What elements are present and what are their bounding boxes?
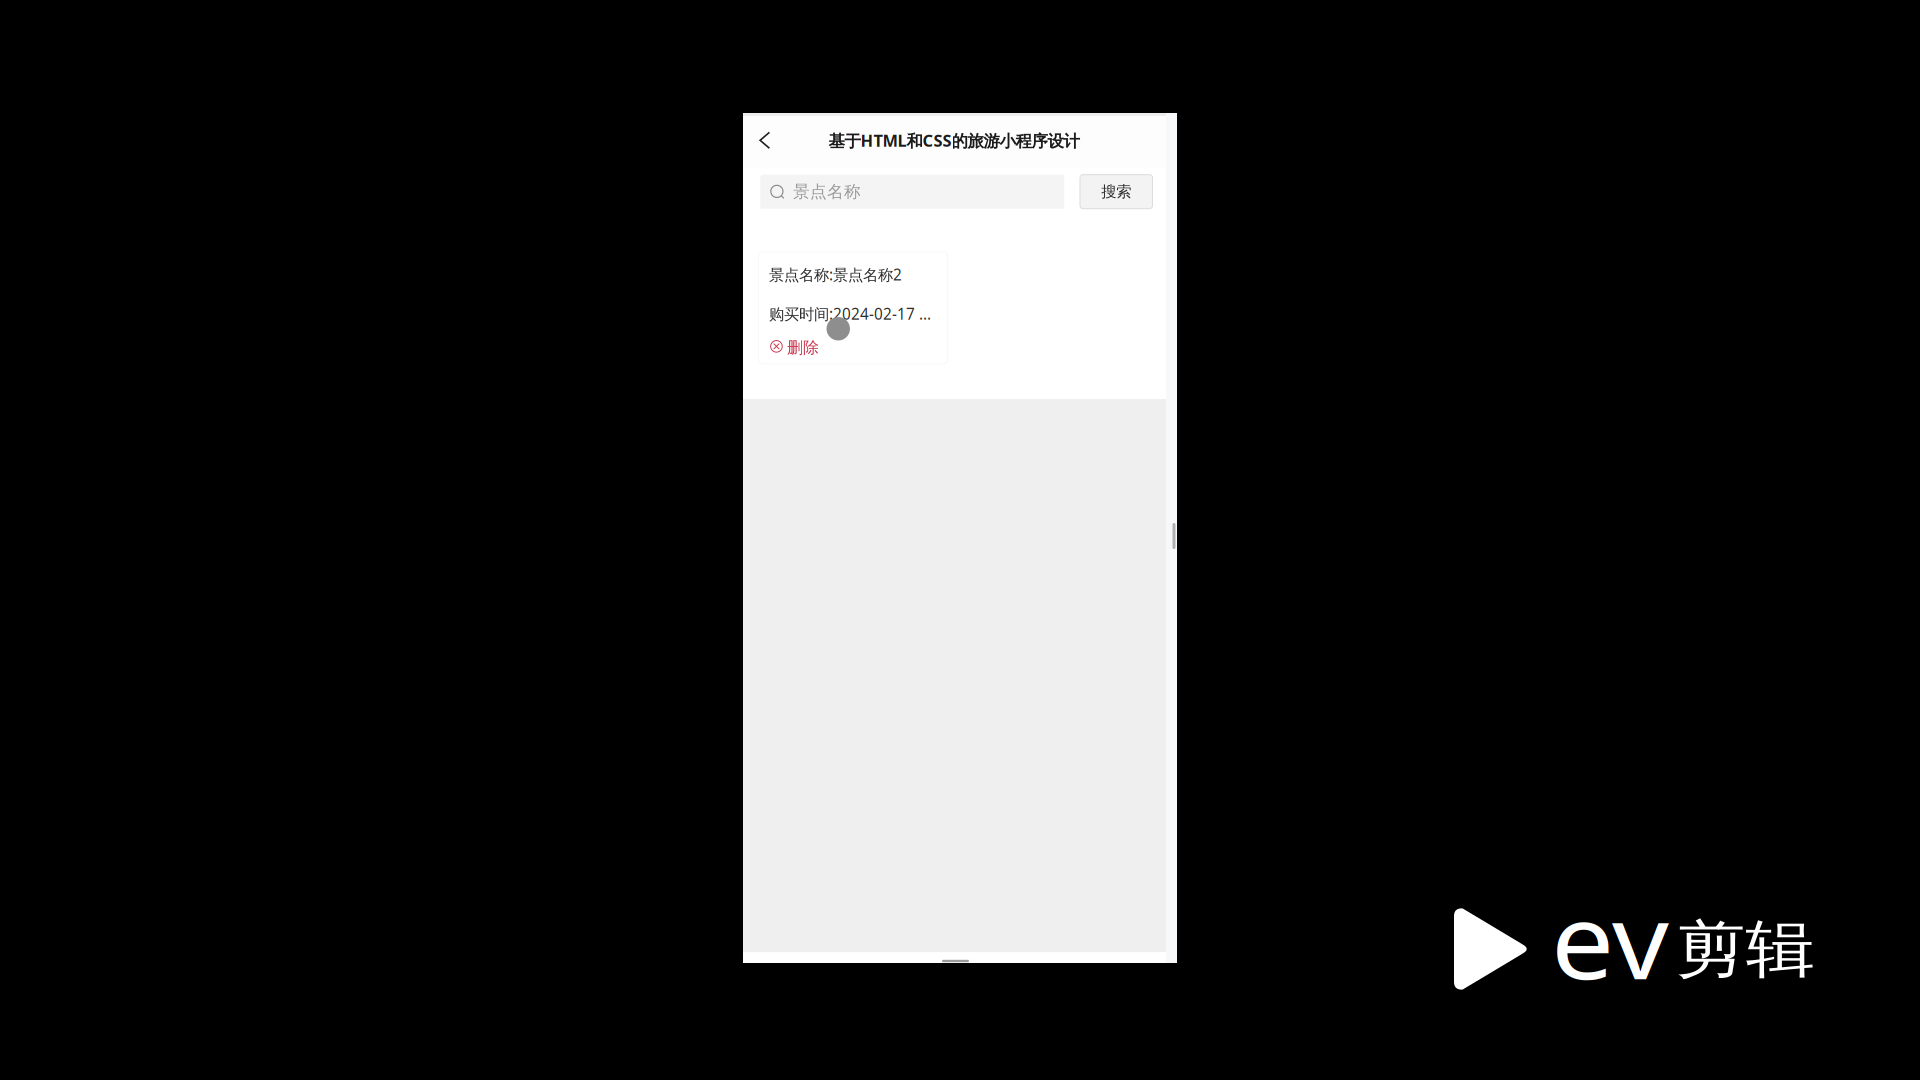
staticText: 搜索 (1101, 182, 1131, 201)
staticText: ev (1551, 868, 1669, 1020)
button[interactable]: 搜索 (1080, 175, 1152, 209)
button[interactable]: 景点名称:景点名称2 (759, 252, 948, 364)
button[interactable]: 景点名称 (760, 175, 1064, 209)
staticText: 基于HTML和CSS的旅游小程序设计 (828, 129, 1079, 152)
staticText: 剪辑 (1676, 911, 1852, 1022)
button[interactable]: 删除 (769, 338, 829, 357)
staticText: 购买时间:2024-02-17 … (769, 303, 931, 324)
staticText: 景点名称:景点名称2 (769, 264, 902, 285)
staticText: 删除 (787, 338, 819, 358)
staticText: 景点名称 (793, 181, 861, 202)
button[interactable]: Back (747, 113, 783, 168)
